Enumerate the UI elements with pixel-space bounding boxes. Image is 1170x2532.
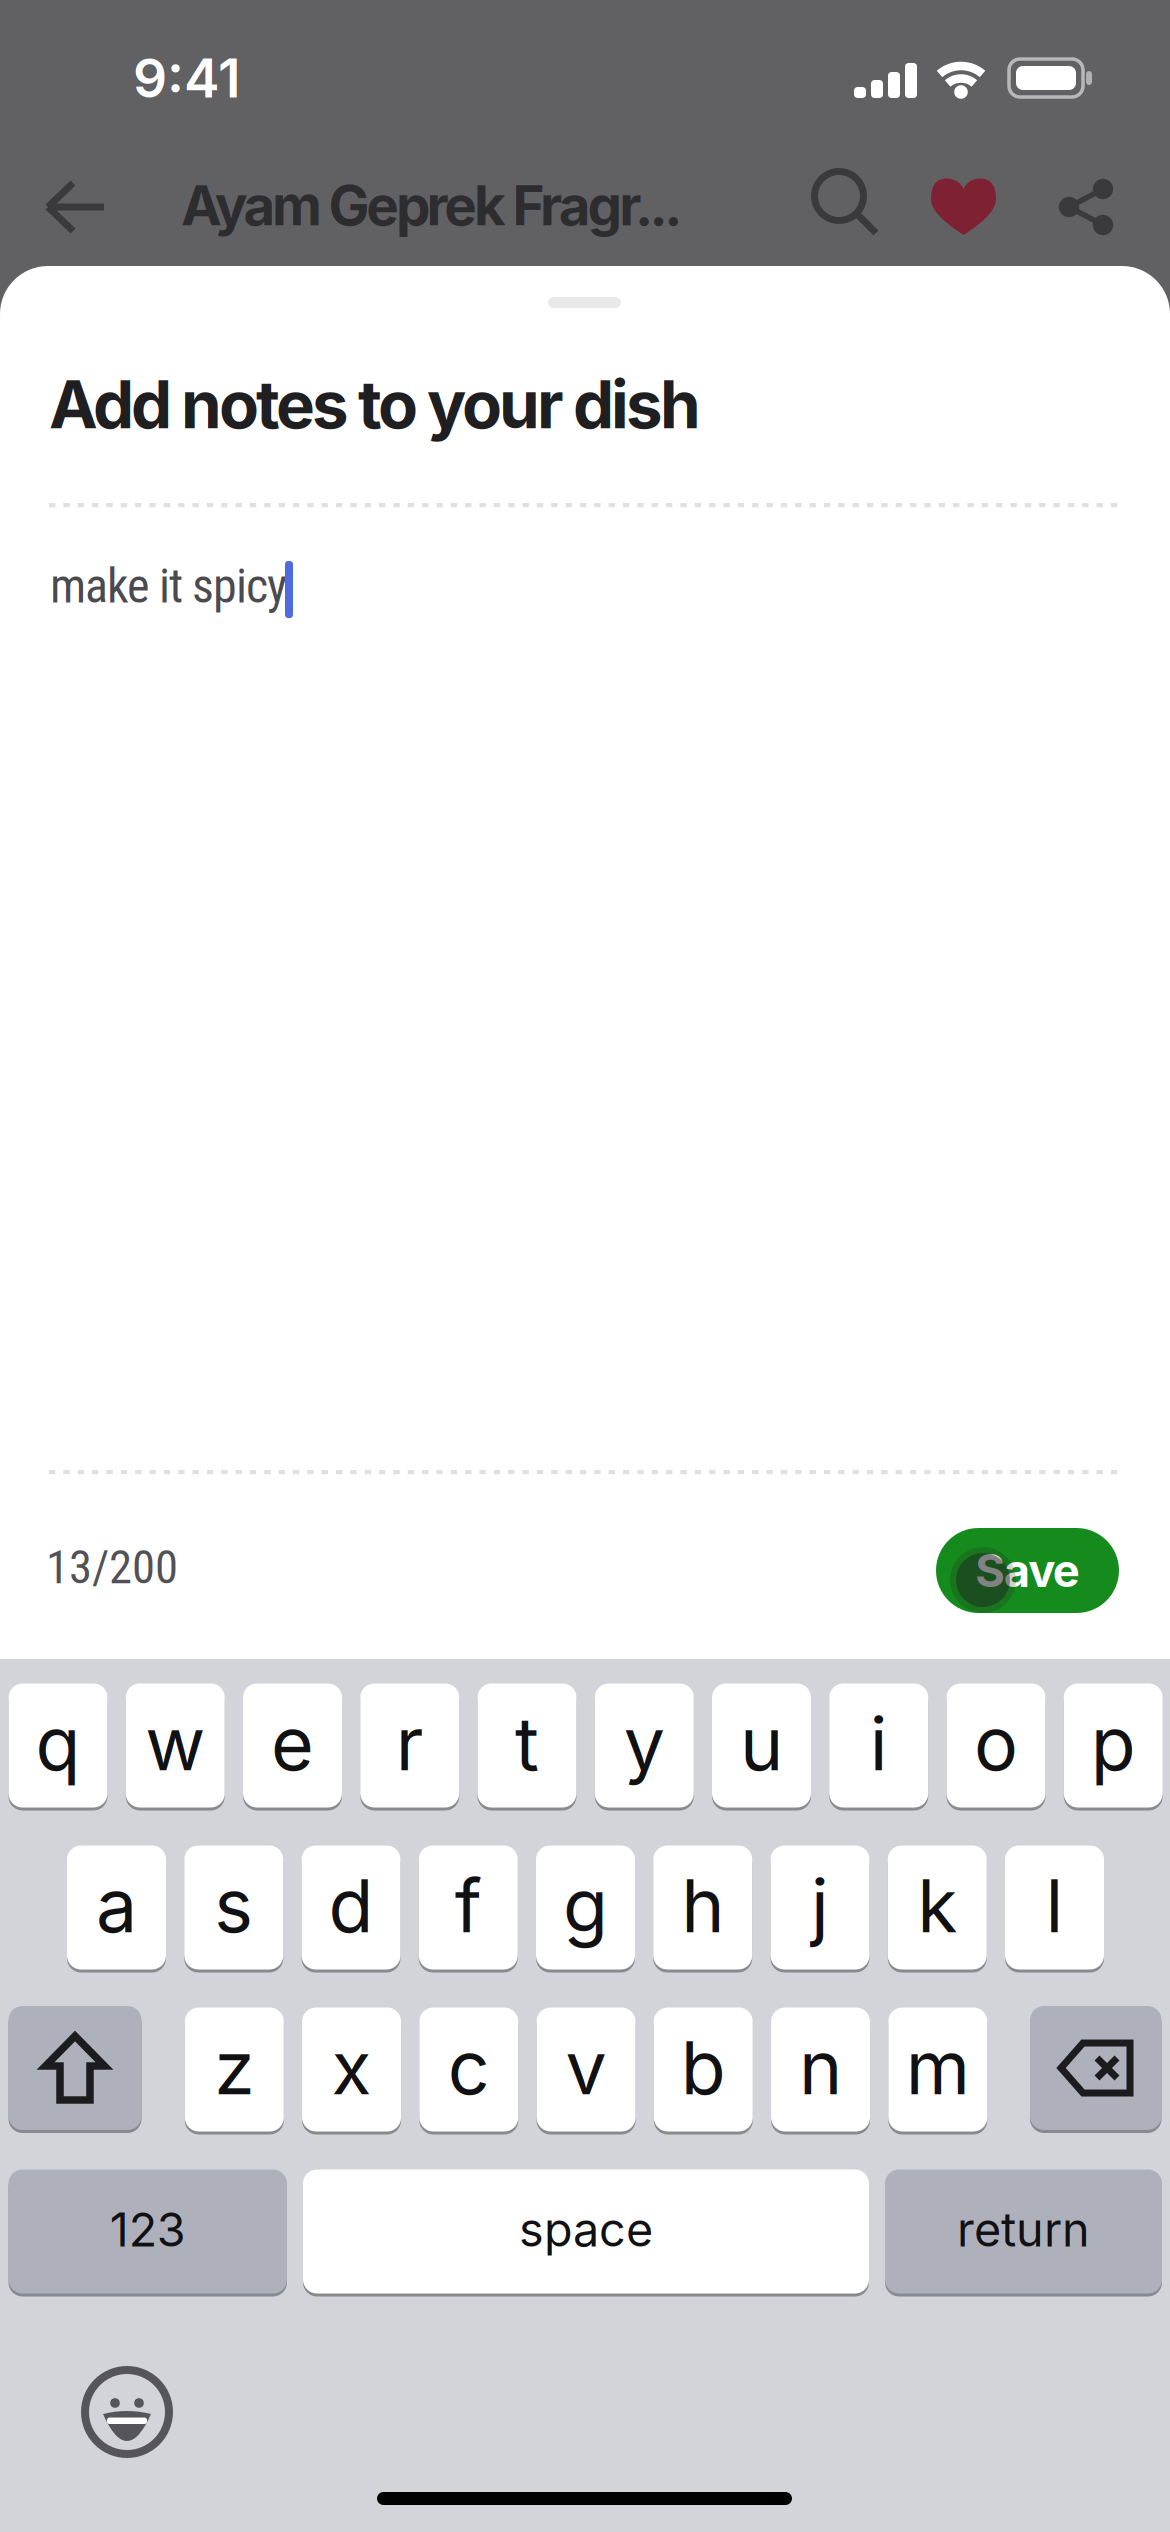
button[interactable]: w bbox=[126, 1682, 225, 1809]
staticText: z bbox=[214, 2024, 254, 2111]
staticText: o bbox=[974, 1700, 1018, 1787]
staticText: f bbox=[455, 1862, 482, 1949]
staticText: y bbox=[624, 1700, 665, 1787]
staticText: Add notes to your dish bbox=[49, 366, 701, 443]
button[interactable]: p bbox=[1064, 1682, 1163, 1809]
staticText: b bbox=[681, 2024, 726, 2111]
button[interactable]: x bbox=[302, 2006, 401, 2133]
button[interactable]: 123 bbox=[8, 2168, 287, 2295]
button[interactable]: t bbox=[477, 1682, 576, 1809]
button[interactable]: Emoji bbox=[77, 2362, 177, 2462]
staticText: u bbox=[740, 1700, 783, 1787]
button[interactable]: Save bbox=[936, 1528, 1119, 1613]
button[interactable]: k bbox=[888, 1844, 987, 1971]
button[interactable]: o bbox=[946, 1682, 1045, 1809]
button[interactable]: Shift bbox=[8, 2006, 141, 2133]
staticText: c bbox=[448, 2024, 490, 2111]
button[interactable]: Share bbox=[1050, 171, 1122, 241]
button[interactable]: m bbox=[888, 2006, 987, 2133]
button[interactable]: return bbox=[885, 2168, 1162, 2295]
staticText: p bbox=[1091, 1700, 1136, 1787]
button[interactable]: e bbox=[243, 1682, 342, 1809]
staticText: k bbox=[917, 1862, 957, 1949]
button[interactable]: Favorite bbox=[925, 172, 1005, 242]
staticText: w bbox=[145, 1700, 205, 1787]
staticText: v bbox=[565, 2024, 606, 2111]
button[interactable]: c bbox=[419, 2006, 518, 2133]
staticText: j bbox=[811, 1862, 829, 1949]
button[interactable]: s bbox=[184, 1844, 283, 1971]
button[interactable]: d bbox=[301, 1844, 400, 1971]
button[interactable]: q bbox=[8, 1682, 107, 1809]
staticText: r bbox=[396, 1700, 424, 1787]
button[interactable]: Back bbox=[45, 172, 107, 242]
staticText: s bbox=[214, 1862, 253, 1949]
staticText: t bbox=[515, 1700, 539, 1787]
button[interactable]: z bbox=[185, 2006, 284, 2133]
staticText: l bbox=[1045, 1862, 1063, 1949]
button[interactable]: Delete bbox=[1030, 2006, 1161, 2133]
staticText: q bbox=[35, 1700, 80, 1787]
staticText: h bbox=[681, 1862, 724, 1949]
staticText: g bbox=[563, 1862, 608, 1949]
staticText: 13/200 bbox=[46, 1540, 178, 1595]
staticText: i bbox=[870, 1700, 888, 1787]
staticText: e bbox=[271, 1700, 314, 1787]
staticText: a bbox=[96, 1862, 137, 1949]
button[interactable]: g bbox=[536, 1844, 635, 1971]
button[interactable]: b bbox=[654, 2006, 753, 2133]
staticText: return bbox=[957, 2202, 1090, 2257]
staticText: n bbox=[799, 2024, 842, 2111]
button[interactable]: j bbox=[770, 1844, 869, 1971]
button[interactable]: r bbox=[360, 1682, 459, 1809]
button[interactable]: i bbox=[829, 1682, 928, 1809]
button[interactable]: space bbox=[303, 2168, 869, 2295]
staticText: 123 bbox=[110, 2202, 186, 2257]
staticText: d bbox=[328, 1862, 373, 1949]
staticText: Save bbox=[975, 1544, 1080, 1597]
button[interactable]: v bbox=[536, 2006, 635, 2133]
button[interactable]: l bbox=[1005, 1844, 1104, 1971]
button[interactable]: h bbox=[653, 1844, 752, 1971]
staticText: m bbox=[906, 2024, 970, 2111]
staticText: Ayam Geprek Fragr... bbox=[181, 173, 682, 237]
button[interactable]: f bbox=[419, 1844, 518, 1971]
button[interactable]: n bbox=[771, 2006, 870, 2133]
staticText: make it spicy bbox=[50, 558, 287, 614]
button[interactable]: u bbox=[712, 1682, 811, 1809]
staticText: x bbox=[332, 2024, 372, 2111]
staticText: 9:41 bbox=[133, 46, 241, 109]
button[interactable]: Search bbox=[810, 172, 882, 242]
staticText: space bbox=[519, 2202, 653, 2257]
button[interactable]: y bbox=[595, 1682, 694, 1809]
button[interactable]: a bbox=[67, 1844, 166, 1971]
